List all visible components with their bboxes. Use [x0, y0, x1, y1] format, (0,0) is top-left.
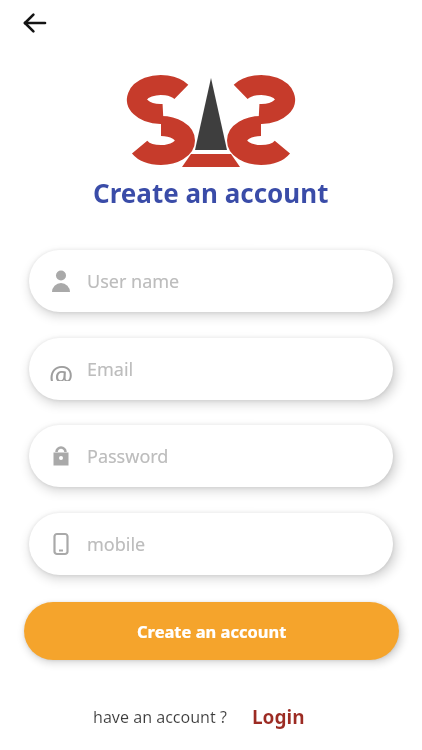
button[interactable]: mobile — [29, 513, 393, 575]
staticText: Email — [87, 357, 134, 382]
staticText: Create an account — [93, 175, 329, 210]
button[interactable] — [14, 2, 56, 44]
button[interactable]: Create an account — [24, 602, 399, 660]
button[interactable]: Password — [29, 425, 393, 487]
button[interactable]: User name — [29, 250, 393, 312]
staticText: Password — [87, 444, 169, 469]
staticText: have an account ? — [93, 706, 227, 728]
staticText: User name — [87, 269, 180, 294]
staticText: mobile — [87, 532, 146, 557]
staticText: Create an account — [137, 620, 287, 642]
staticText: @ — [49, 357, 73, 381]
button[interactable]: Login — [252, 704, 305, 730]
button[interactable]: @ — [29, 338, 393, 400]
staticText: Login — [252, 704, 305, 730]
